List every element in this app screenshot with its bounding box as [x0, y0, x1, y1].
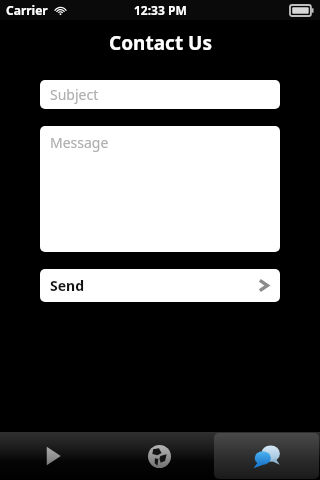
staticText: Carrier: [6, 2, 48, 18]
button[interactable]: Play: [1, 433, 105, 479]
button[interactable]: Message: [40, 126, 280, 252]
button[interactable]: Messages: [214, 433, 319, 479]
staticText: Send: [50, 276, 85, 295]
staticText: Message: [50, 133, 109, 152]
button[interactable]: Web: [107, 433, 212, 479]
button[interactable]: Subject: [40, 80, 280, 109]
staticText: 12:33 PM: [134, 2, 187, 18]
staticText: Contact Us: [109, 30, 212, 56]
button[interactable]: Send: [40, 269, 280, 302]
staticText: Subject: [50, 85, 99, 104]
